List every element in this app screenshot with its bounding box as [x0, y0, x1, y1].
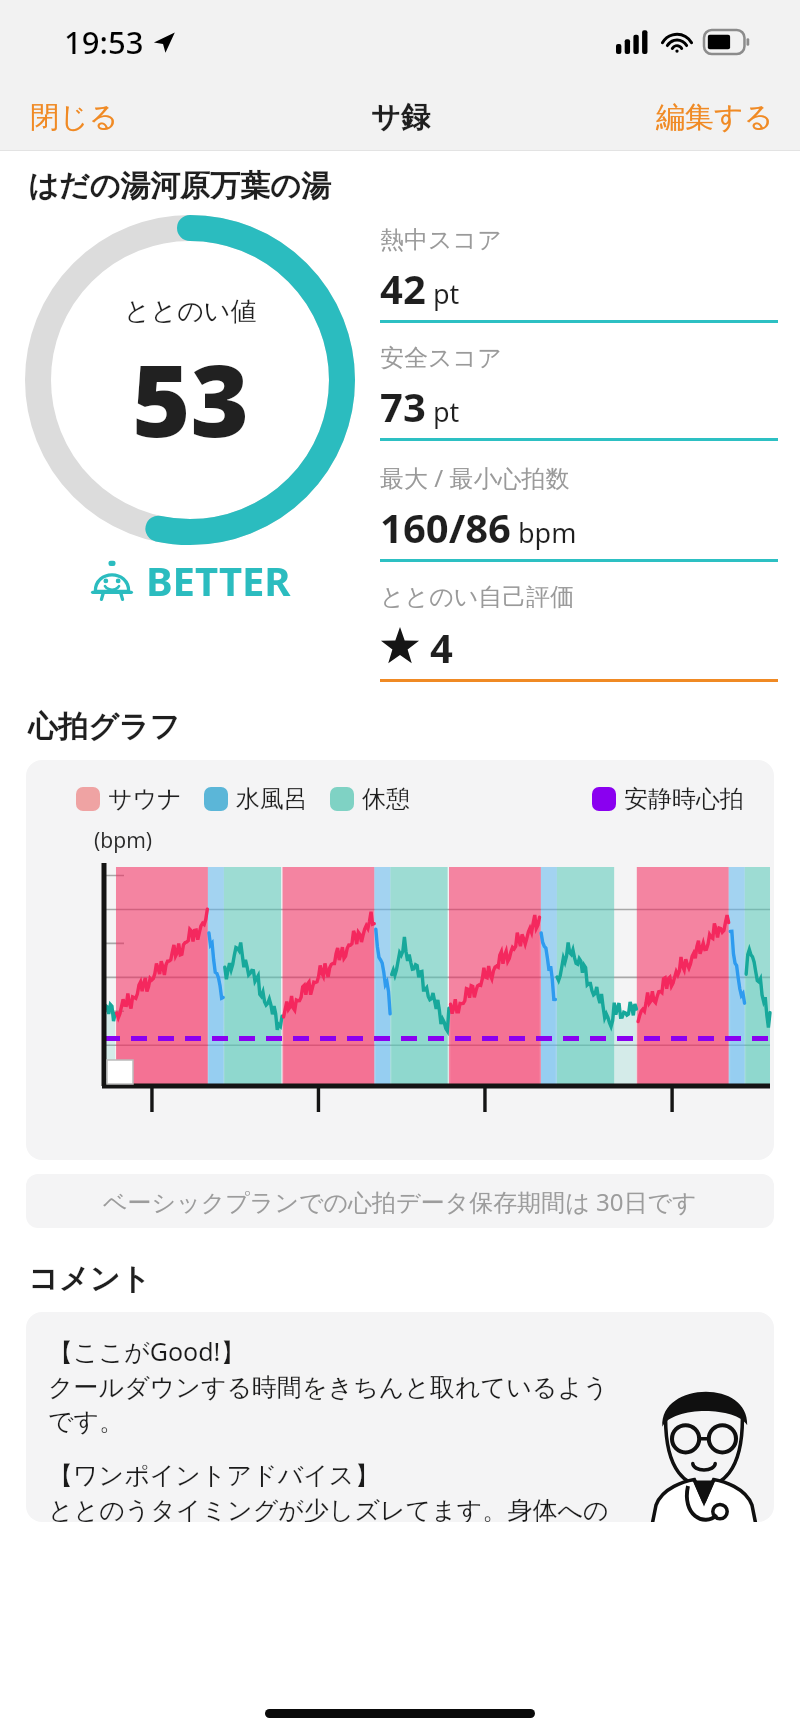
button[interactable]: 安全スコア: [380, 343, 778, 461]
staticText: ととのい値: [124, 295, 257, 328]
staticText: コメント: [28, 1260, 151, 1298]
staticText: 安静時心拍: [624, 784, 744, 814]
staticText: クールダウンする時間をきちんと取れているようです。: [48, 1372, 614, 1438]
button[interactable]: 最大 / 最小心拍数: [380, 461, 778, 582]
staticText: サ録: [371, 99, 430, 136]
staticText: 編集する: [656, 99, 774, 136]
staticText: bpm: [518, 514, 577, 551]
staticText: サウナ: [108, 784, 182, 814]
staticText: 休憩: [362, 784, 410, 814]
staticText: 42: [380, 261, 426, 315]
staticText: はだの湯河原万葉の湯: [28, 167, 331, 205]
staticText: 【ワンポイントアドバイス】: [48, 1460, 380, 1491]
staticText: ととのうタイミングが少しズレてます。身体への負荷や動線を: [48, 1495, 614, 1522]
staticText: 安全スコア: [380, 343, 502, 373]
staticText: 73: [380, 379, 426, 433]
staticText: 53: [132, 330, 250, 466]
other: Doctor illustration: [624, 1374, 774, 1522]
button[interactable]: 閉じる: [0, 91, 149, 144]
staticText: ベーシックプランでの心拍データ保存期間は 30日です: [103, 1185, 697, 1218]
staticText: (bpm): [94, 826, 153, 855]
staticText: 心拍グラフ: [28, 708, 181, 746]
staticText: 【ここがGood!】: [48, 1334, 246, 1368]
staticText: 19:53: [64, 21, 144, 63]
staticText: pt: [433, 275, 460, 312]
button[interactable]: 熱中スコア: [380, 225, 778, 343]
staticText: 熱中スコア: [380, 225, 502, 255]
staticText: ととのい自己評価: [380, 582, 575, 612]
button[interactable]: Better: [82, 551, 299, 609]
button[interactable]: 編集する: [630, 91, 800, 144]
other: Better: [90, 558, 134, 602]
staticText: pt: [433, 393, 460, 430]
staticText: BETTER: [146, 553, 291, 607]
staticText: 閉じる: [30, 99, 119, 136]
staticText: 160/86: [380, 500, 511, 554]
staticText: 4: [430, 620, 453, 674]
staticText: 水風呂: [236, 784, 308, 814]
staticText: 最大 / 最小心拍数: [380, 461, 570, 494]
button[interactable]: ととのい自己評価: [380, 582, 778, 682]
